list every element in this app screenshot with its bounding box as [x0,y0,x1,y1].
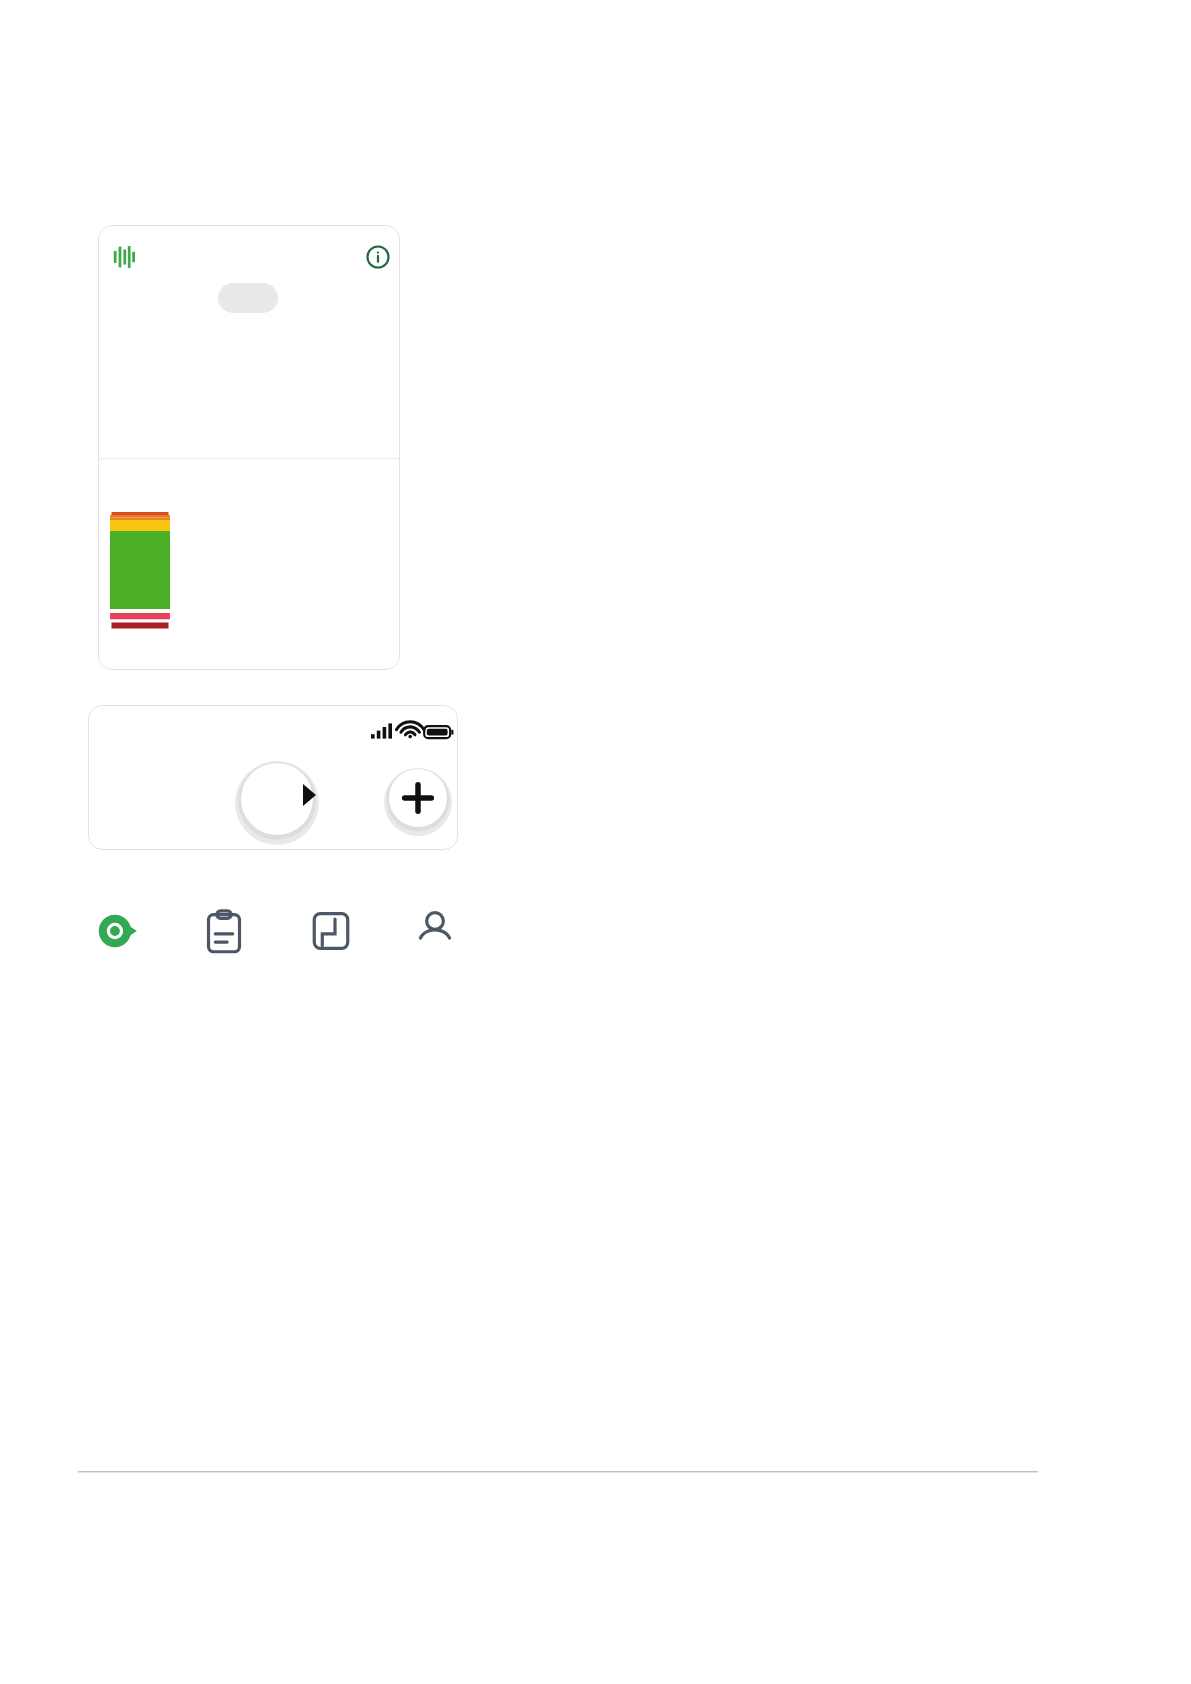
button[interactable]: Audio levels [98,225,400,670]
button[interactable]: Tasks [193,900,255,962]
button[interactable]: Audio levels [111,244,137,270]
button[interactable]: Info [365,244,391,270]
button[interactable]: Home [87,900,149,962]
button[interactable]: Add [382,762,454,834]
button[interactable]: Documents [300,900,362,962]
button[interactable]: Play [234,756,320,842]
button[interactable]: Profile [404,900,466,962]
